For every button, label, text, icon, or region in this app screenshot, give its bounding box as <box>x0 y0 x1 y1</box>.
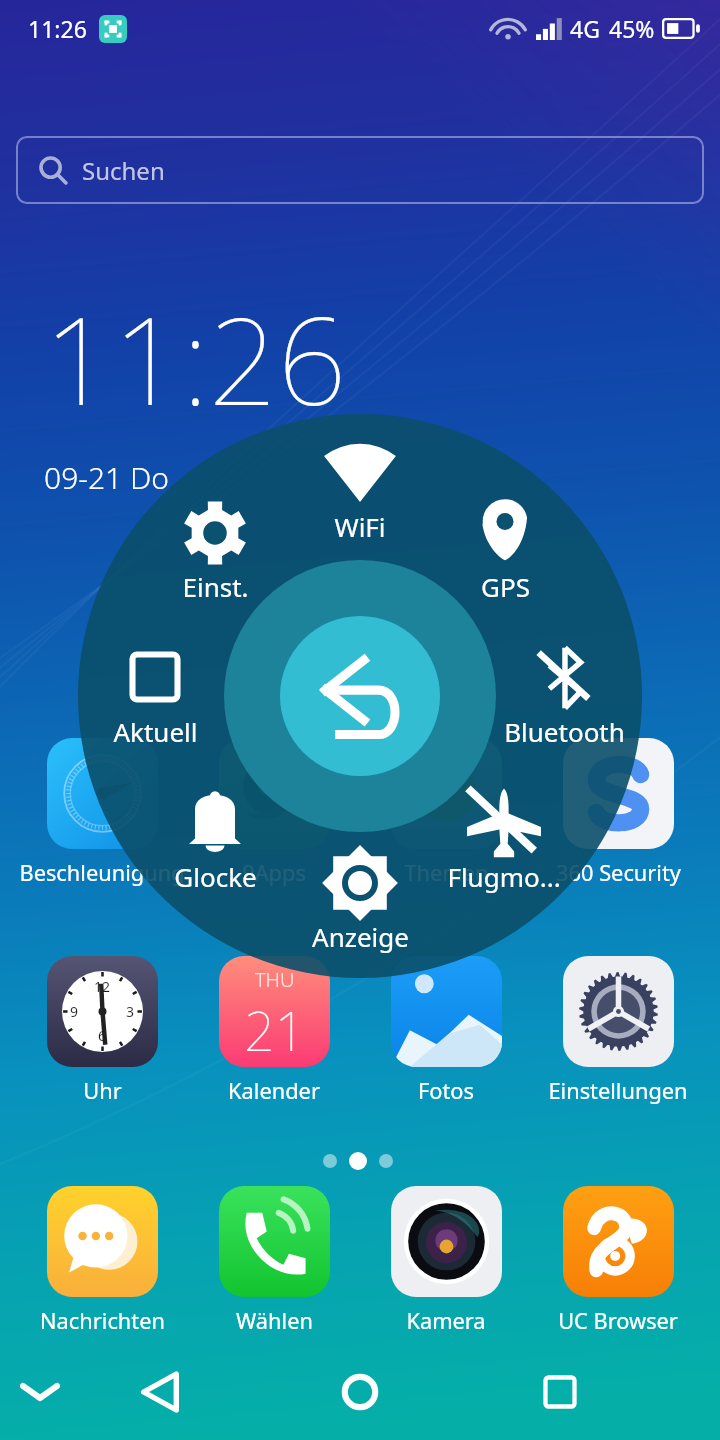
button[interactable] <box>219 1186 330 1297</box>
staticText: 4G <box>570 13 600 44</box>
button[interactable] <box>563 956 674 1067</box>
staticText: Uhr <box>83 1076 122 1106</box>
button[interactable] <box>391 1186 502 1297</box>
staticText: Aktuell <box>113 714 198 749</box>
button[interactable] <box>563 1186 674 1297</box>
button[interactable]: 12 <box>47 956 158 1067</box>
button[interactable]: Close <box>290 626 430 766</box>
button[interactable]: Flugmo... <box>414 770 594 901</box>
button[interactable]: Aktuell <box>65 625 245 756</box>
button[interactable]: GPS <box>415 481 595 611</box>
staticText: Bluetooth <box>504 714 625 749</box>
button[interactable] <box>391 738 502 849</box>
staticText: Wählen <box>236 1306 313 1336</box>
staticText: Einstellungen <box>548 1076 688 1106</box>
staticText: Beschleunigung <box>19 858 185 888</box>
staticText: 12 <box>94 977 111 996</box>
button[interactable] <box>47 1186 158 1297</box>
staticText: 45% <box>609 13 655 44</box>
button[interactable]: Suchen <box>16 136 704 204</box>
staticText: 9Apps <box>242 858 306 888</box>
button[interactable]: Einst. <box>125 481 305 611</box>
button[interactable]: Hide <box>10 1362 70 1422</box>
button[interactable] <box>47 738 158 849</box>
button[interactable]: Bluetooth <box>474 626 654 756</box>
button[interactable] <box>391 956 502 1067</box>
staticText: Themen <box>404 858 489 888</box>
button[interactable]: Recents <box>530 1362 590 1422</box>
staticText: 3 <box>126 1002 135 1021</box>
staticText: WiFi <box>334 509 386 544</box>
staticText: Anzeige <box>312 919 409 954</box>
staticText: Kamera <box>406 1306 486 1336</box>
staticText: Suchen <box>82 154 165 187</box>
staticText: Flugmo... <box>447 859 561 894</box>
staticText: UC Browser <box>558 1306 678 1336</box>
button[interactable]: THU <box>219 956 330 1067</box>
staticText: GPS <box>481 569 530 604</box>
button[interactable] <box>563 738 674 849</box>
staticText: 09-21 Do <box>44 457 170 498</box>
staticText: Glocke <box>174 859 257 894</box>
button[interactable]: WiFi <box>270 418 450 551</box>
button[interactable]: Back <box>130 1362 190 1422</box>
staticText: THU <box>255 966 295 993</box>
staticText: 9 <box>70 1002 79 1021</box>
button[interactable]: Home <box>330 1362 390 1422</box>
button[interactable] <box>219 738 330 849</box>
button[interactable]: Anzeige <box>270 831 450 961</box>
staticText: Einst. <box>182 569 249 604</box>
staticText: 11:26 <box>28 13 87 44</box>
staticText: Fotos <box>418 1076 474 1106</box>
staticText: Nachrichten <box>40 1306 165 1336</box>
staticText: 21 <box>244 993 306 1067</box>
staticText: 360 Security <box>556 858 681 888</box>
staticText: 6 <box>98 1026 107 1045</box>
staticText: Kalender <box>228 1076 320 1106</box>
staticText: 11:26 <box>44 276 347 441</box>
button[interactable]: Glocke <box>125 770 305 901</box>
